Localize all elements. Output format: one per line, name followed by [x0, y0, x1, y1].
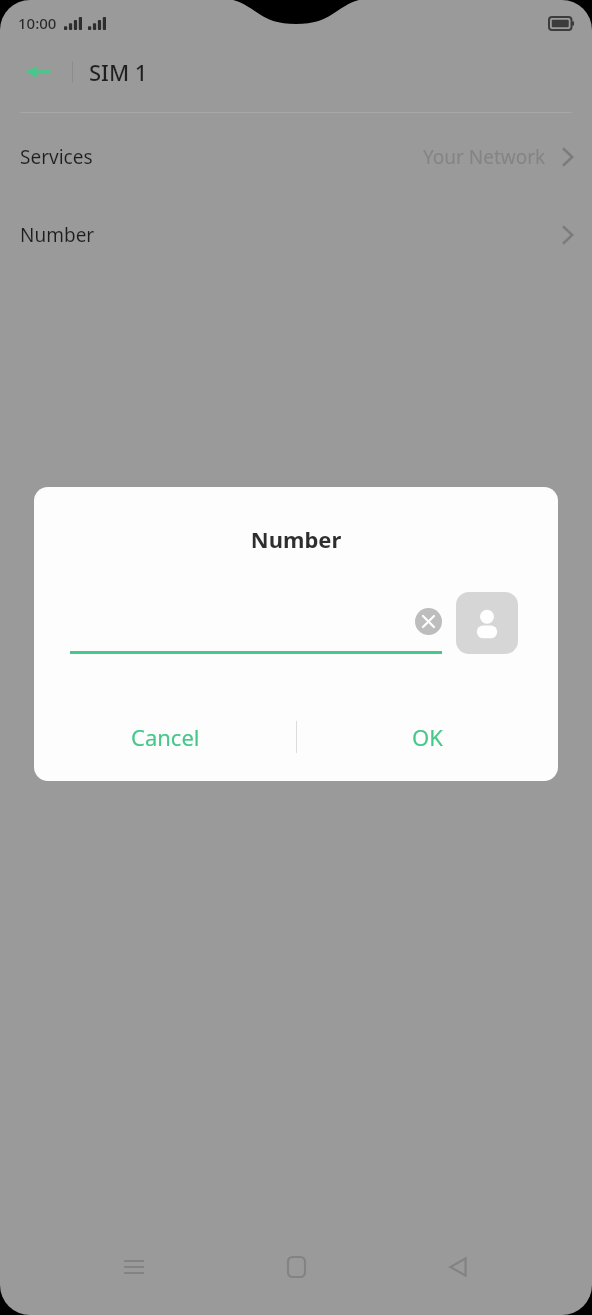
- button[interactable]: Pick contact: [456, 592, 518, 654]
- button[interactable]: Recents: [106, 1239, 162, 1295]
- button[interactable]: Clear: [70, 592, 442, 654]
- staticText: Number: [34, 524, 558, 554]
- button[interactable]: Clear: [415, 608, 442, 635]
- staticText: Cancel: [131, 722, 200, 752]
- button[interactable]: OK: [296, 693, 558, 781]
- button[interactable]: Home: [268, 1239, 324, 1295]
- staticText: Number: [20, 222, 95, 248]
- staticText: 10:00: [18, 13, 57, 33]
- staticText: SIM 1: [89, 57, 148, 87]
- button[interactable]: Back: [430, 1239, 486, 1295]
- staticText: Services: [20, 144, 93, 170]
- staticText: OK: [412, 722, 443, 752]
- button[interactable]: Cancel: [34, 693, 296, 781]
- button[interactable]: Services: [0, 139, 592, 175]
- button[interactable]: Back: [16, 50, 60, 94]
- button[interactable]: Number: [0, 217, 592, 253]
- staticText: Your Network: [423, 144, 546, 170]
